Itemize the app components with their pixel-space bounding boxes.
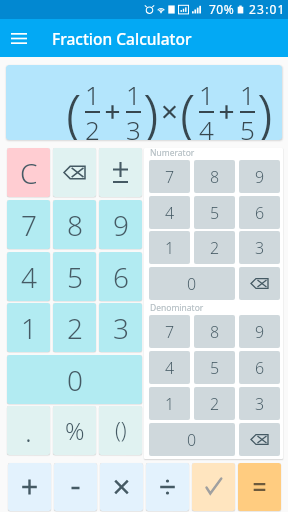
staticText: ( (180, 75, 196, 140)
button[interactable]: 2 (194, 231, 235, 264)
button[interactable]: 9 (239, 315, 280, 348)
button[interactable]: () (99, 406, 142, 455)
staticText: 4 (165, 202, 175, 224)
staticText: ) (143, 75, 159, 140)
staticText: 0 (187, 429, 197, 451)
staticText: 1 (199, 77, 214, 112)
staticText: 5 (67, 258, 83, 296)
staticText: 6 (255, 202, 265, 224)
button[interactable]: Backspace (239, 267, 280, 300)
staticText: ( (66, 75, 82, 140)
staticText: 4 (165, 357, 175, 379)
staticText: 7 (165, 321, 175, 343)
staticText: 9 (113, 206, 129, 244)
staticText: 1 (21, 309, 37, 347)
staticText: 23:01 (249, 1, 286, 17)
staticText: 5 (210, 202, 220, 224)
staticText: 8 (210, 321, 220, 343)
staticText: 70% (209, 1, 235, 17)
staticText: 2 (210, 237, 220, 259)
staticText: Numerator (150, 148, 195, 159)
button[interactable]: 6 (99, 252, 142, 301)
staticText: 7 (165, 166, 175, 188)
button[interactable]: 0 (149, 267, 235, 300)
button[interactable]: ( (6, 65, 282, 140)
button[interactable]: 7 (149, 160, 190, 193)
button[interactable]: 5 (53, 252, 96, 301)
button[interactable]: 6 (239, 196, 280, 229)
staticText: 9 (255, 321, 265, 343)
button[interactable]: Apply (192, 463, 235, 511)
button[interactable]: Backspace (239, 423, 280, 456)
staticText: 2 (67, 309, 83, 347)
staticText: 2 (85, 112, 100, 140)
staticText: 7 (21, 206, 37, 244)
button[interactable]: % (53, 406, 96, 455)
button[interactable]: 9 (99, 200, 142, 249)
button[interactable]: 2 (53, 303, 96, 352)
button[interactable]: Multiply (100, 463, 143, 511)
staticText: 1 (165, 237, 175, 259)
button[interactable]: 9 (239, 160, 280, 193)
button[interactable]: 0 (7, 355, 142, 404)
button[interactable]: 4 (149, 351, 190, 384)
button[interactable]: 1 (149, 231, 190, 264)
button[interactable]: . (7, 406, 50, 455)
staticText: 5 (240, 112, 255, 140)
button[interactable]: 0 (149, 423, 235, 456)
staticText: 2 (210, 393, 220, 415)
button[interactable]: 7 (149, 315, 190, 348)
button[interactable]: 4 (7, 252, 50, 301)
button[interactable]: 1 (149, 387, 190, 420)
button[interactable]: 2 (194, 387, 235, 420)
button[interactable]: 4 (149, 196, 190, 229)
button[interactable]: 8 (194, 315, 235, 348)
staticText: () (115, 416, 127, 445)
button[interactable]: Backspace (53, 148, 96, 197)
button[interactable]: C (7, 148, 50, 197)
staticText: 3 (126, 112, 141, 140)
staticText: 8 (67, 206, 83, 244)
staticText: 5 (210, 357, 220, 379)
button[interactable]: 7 (7, 200, 50, 249)
staticText: 6 (113, 258, 129, 296)
staticText: 1 (240, 77, 255, 112)
staticText: . (25, 412, 32, 450)
button[interactable]: 6 (239, 351, 280, 384)
staticText: 0 (67, 361, 83, 399)
staticText: % (65, 414, 85, 447)
button[interactable]: 3 (239, 231, 280, 264)
staticText: 1 (126, 77, 141, 112)
staticText: ) (257, 75, 272, 140)
staticText: 3 (113, 309, 129, 347)
button[interactable]: Open navigation menu (0, 19, 38, 57)
button[interactable]: 8 (194, 160, 235, 193)
staticText: 8 (210, 166, 220, 188)
staticText: 4 (21, 258, 37, 296)
staticText: 0 (187, 273, 197, 295)
button[interactable]: 3 (99, 303, 142, 352)
button[interactable]: 3 (239, 387, 280, 420)
button[interactable]: Equals (238, 463, 281, 511)
staticText: 3 (255, 237, 265, 259)
staticText: 6 (255, 357, 265, 379)
button[interactable]: 5 (194, 196, 235, 229)
staticText: C (20, 154, 38, 192)
staticText: 9 (255, 166, 265, 188)
staticText: 1 (165, 393, 175, 415)
staticText: 1 (85, 77, 100, 112)
button[interactable]: 8 (53, 200, 96, 249)
staticText: Fraction Calculator (52, 28, 192, 49)
button[interactable]: 5 (194, 351, 235, 384)
staticText: Denominator (150, 302, 204, 314)
button[interactable]: Plus or minus (99, 148, 142, 197)
button[interactable]: Plus (8, 463, 51, 511)
button[interactable]: Minus (54, 463, 97, 511)
staticText: 4 (199, 112, 214, 140)
staticText: 3 (255, 393, 265, 415)
button[interactable]: 1 (7, 303, 50, 352)
button[interactable]: Divide (146, 463, 189, 511)
